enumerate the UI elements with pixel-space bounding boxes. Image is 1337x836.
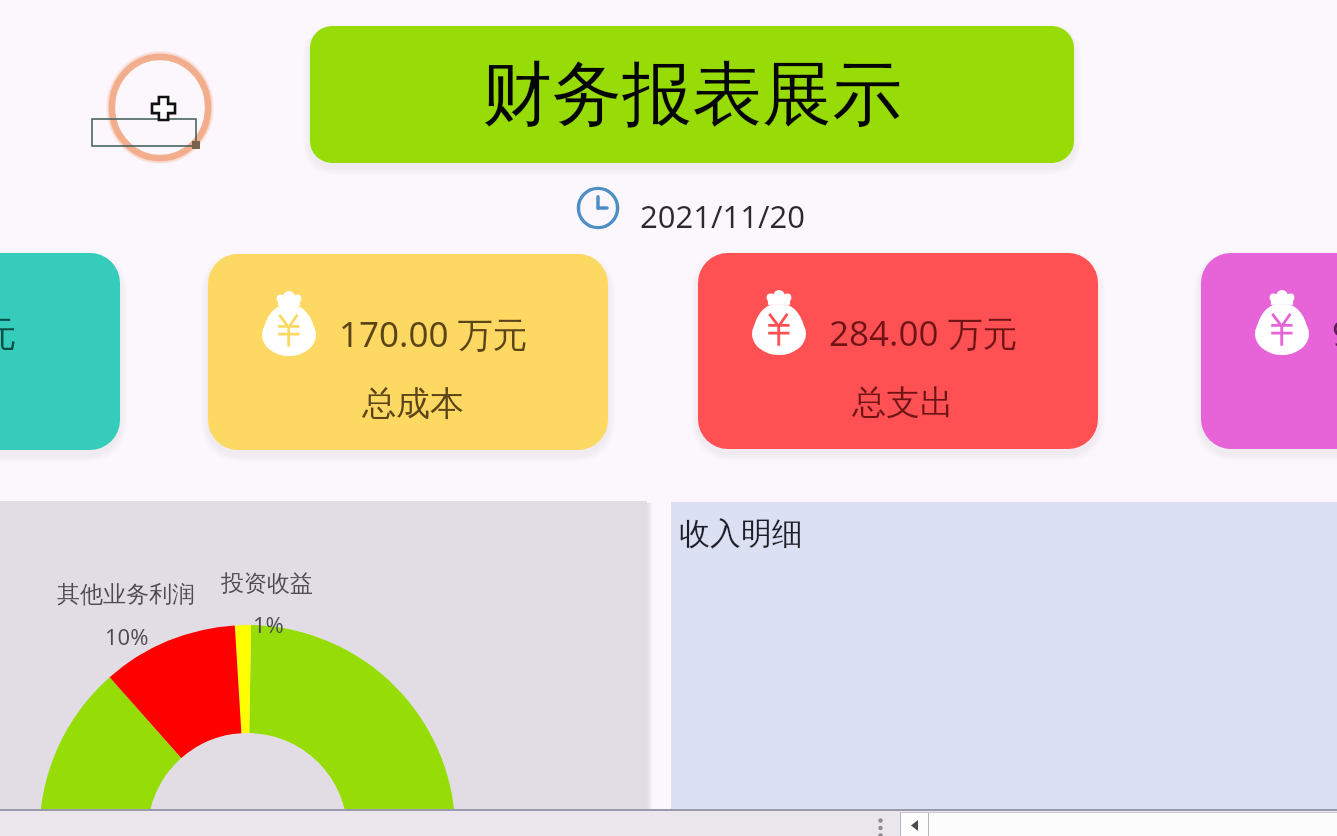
staticText: 2021/11/20 bbox=[640, 195, 805, 237]
staticText: 170.00 万元 bbox=[339, 310, 528, 358]
button[interactable]: 170.00 万元 bbox=[208, 254, 608, 450]
staticText: 276.00 万元 bbox=[0, 309, 17, 357]
staticText: 投资收益 bbox=[221, 569, 313, 598]
staticText: 98.00 万元 bbox=[1332, 309, 1337, 357]
button[interactable]: 276.00 万元 bbox=[0, 253, 120, 450]
button[interactable]: 98.00 万元 bbox=[1201, 253, 1337, 449]
staticText: 财务报表展示 bbox=[482, 51, 902, 139]
button[interactable]: Scroll left bbox=[901, 812, 928, 836]
staticText: 284.00 万元 bbox=[829, 309, 1018, 357]
button[interactable]: 284.00 万元 bbox=[698, 253, 1098, 449]
staticText: 总支出 bbox=[852, 381, 954, 424]
button[interactable]: 财务报表展示 bbox=[310, 26, 1074, 163]
staticText: 1% bbox=[253, 609, 284, 639]
staticText: 收入明细 bbox=[679, 514, 803, 553]
staticText: 总成本 bbox=[362, 382, 464, 425]
staticText: 10% bbox=[105, 621, 149, 651]
staticText: 其他业务利润 bbox=[57, 580, 195, 609]
